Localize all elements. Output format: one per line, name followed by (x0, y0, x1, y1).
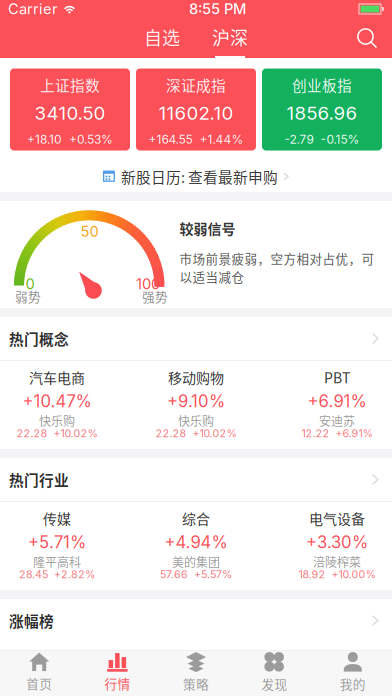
staticText: 28.45 (19, 568, 48, 581)
staticText: 综合 (182, 508, 210, 528)
staticText: 发现 (261, 675, 287, 693)
staticText: 汽车电商 (29, 367, 85, 387)
staticText: 安迪苏 (319, 412, 355, 429)
staticText: 隆平高科 (33, 553, 81, 570)
staticText: 57.66 (160, 568, 188, 581)
staticText: +6.91% (307, 391, 366, 411)
button[interactable]: 行情 (78, 650, 157, 696)
button[interactable]: 热门概念 (0, 317, 392, 360)
button[interactable]: 涨幅榜 (0, 599, 392, 642)
staticText: 热门行业 (9, 469, 69, 490)
staticText: 22.28 (155, 427, 186, 440)
button[interactable]: 电气设备 (267, 502, 392, 590)
staticText: +10.02% (192, 427, 236, 440)
button[interactable]: 深证成指 (136, 68, 256, 150)
staticText: 涨幅榜 (9, 610, 54, 631)
staticText: 传媒 (43, 508, 71, 528)
staticText: 沪深 (212, 24, 248, 50)
button[interactable]: 热门行业 (0, 458, 392, 501)
button[interactable]: 自选 (144, 19, 180, 57)
staticText: 我的 (340, 675, 366, 693)
staticText: 11602.10 (158, 102, 233, 124)
staticText: 22.28 (16, 427, 47, 440)
staticText: 策略 (183, 675, 209, 693)
staticText: 移动购物 (168, 367, 224, 387)
staticText: 热门概念 (9, 328, 69, 349)
staticText: +9.10% (167, 391, 225, 411)
button[interactable]: 新股日历: 查看最新申购 (0, 161, 392, 192)
button[interactable]: 创业板指 (262, 68, 382, 150)
staticText: +4.94% (164, 532, 227, 552)
staticText: +10.47% (22, 391, 91, 411)
staticText: 新股日历: 查看最新申购 (121, 166, 278, 187)
staticText: +0.53% (69, 132, 113, 147)
staticText: +6.91% (335, 427, 372, 440)
staticText: +10.00% (331, 568, 375, 581)
staticText: 100 (136, 275, 160, 293)
button[interactable]: 综合 (126, 502, 266, 590)
staticText: 美的集团 (172, 553, 220, 570)
staticText: 0 (25, 275, 34, 293)
staticText: -0.15% (320, 132, 359, 147)
staticText: 自选 (144, 24, 180, 50)
button[interactable]: 发现 (235, 650, 314, 696)
button[interactable]: 首页 (0, 650, 78, 696)
staticText: 3410.50 (34, 102, 105, 124)
button[interactable]: PBT (267, 361, 392, 449)
staticText: 1856.96 (286, 102, 357, 124)
staticText: +1.44% (199, 132, 243, 147)
button[interactable]: 移动购物 (126, 361, 266, 449)
staticText: 上证指数 (40, 74, 100, 95)
button[interactable]: 上证指数 (10, 68, 130, 150)
button[interactable]: 传媒 (0, 502, 127, 590)
staticText: +18.10 (27, 132, 62, 147)
staticText: 50 (80, 222, 98, 240)
staticText: 电气设备 (309, 508, 365, 528)
staticText: 较弱信号 (179, 218, 235, 238)
staticText: 快乐购 (178, 412, 214, 429)
staticText: +164.55 (148, 132, 192, 147)
staticText: -2.79 (284, 132, 313, 147)
button[interactable]: Search (357, 28, 392, 49)
staticText: +3.30% (306, 532, 368, 552)
staticText: +5.57% (194, 568, 232, 581)
staticText: 18.92 (298, 568, 325, 581)
staticText: 弱势 (15, 287, 41, 305)
staticText: PBT (324, 367, 350, 387)
staticText: +2.82% (54, 568, 95, 581)
staticText: 行情 (105, 674, 131, 692)
button[interactable]: 策略 (157, 650, 235, 696)
staticText: 首页 (26, 674, 52, 692)
staticText: +5.71% (28, 532, 86, 552)
button[interactable]: 沪深 (212, 19, 248, 57)
staticText: 快乐购 (39, 412, 75, 429)
button[interactable]: 汽车电商 (0, 361, 127, 449)
staticText: 创业板指 (292, 74, 352, 95)
staticText: 深证成指 (166, 74, 226, 95)
staticText: +10.02% (53, 427, 97, 440)
staticText: 涪陵榨菜 (313, 553, 361, 570)
staticText: 强势 (142, 287, 168, 305)
staticText: 8:55 PM (189, 0, 246, 18)
button[interactable]: 我的 (314, 650, 392, 696)
staticText: 12.22 (301, 427, 329, 440)
staticText: Carrier (8, 0, 58, 18)
staticText: 市场前景疲弱，空方相对占优，可以适当减仓 (179, 249, 374, 286)
